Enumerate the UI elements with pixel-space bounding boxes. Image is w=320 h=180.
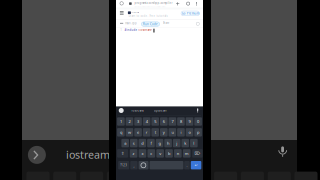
staticText: r <box>146 130 148 135</box>
staticText: d <box>141 140 143 146</box>
staticText: upstream <box>154 109 166 112</box>
button[interactable]: iostream <box>66 148 186 162</box>
staticText: <iostream> <box>138 28 153 32</box>
staticText: ↵ <box>195 163 198 167</box>
staticText: u <box>171 130 173 135</box>
staticText: 1 <box>120 119 122 124</box>
staticText: 3 <box>137 119 139 124</box>
staticText: Programiz <box>131 11 139 13</box>
staticText: f <box>150 140 151 146</box>
staticText: Go Premium <box>182 12 199 15</box>
staticText: m <box>185 151 189 156</box>
staticText: j <box>176 140 177 146</box>
staticText: 8 <box>180 119 182 124</box>
staticText: i <box>180 130 181 135</box>
staticText: #include <box>125 28 138 32</box>
button[interactable]: Play <box>26 144 48 166</box>
staticText: 5 <box>154 119 156 124</box>
staticText: l <box>193 140 194 146</box>
staticText: k <box>184 140 186 146</box>
staticText: a <box>124 140 126 146</box>
staticText: main.cpp <box>125 21 137 25</box>
staticText: 4 <box>146 119 148 124</box>
staticText: 6 <box>163 119 165 124</box>
staticText: Run Code <box>143 22 158 26</box>
staticText: n <box>177 151 179 156</box>
staticText: 0 <box>197 119 199 124</box>
staticText: w <box>128 130 131 135</box>
staticText: e <box>137 130 139 135</box>
staticText: . <box>186 162 187 168</box>
staticText: b <box>168 151 170 156</box>
staticText: p <box>197 130 199 135</box>
staticText: ?123 <box>120 163 127 167</box>
staticText: 9 <box>188 119 190 124</box>
staticText: ⌦ <box>194 151 200 156</box>
staticText: g <box>158 140 160 146</box>
button[interactable]: Voice search <box>276 143 292 161</box>
staticText: iostreams <box>131 109 143 112</box>
staticText: ⇧ <box>121 151 124 156</box>
staticText: o <box>188 130 190 135</box>
staticText: y <box>163 130 165 135</box>
staticText: x <box>141 151 143 156</box>
staticText: Share <box>163 21 170 25</box>
staticText: 1 <box>120 28 122 32</box>
staticText: 7 <box>171 119 173 124</box>
staticText: z <box>133 151 135 156</box>
staticText: , <box>133 162 134 168</box>
staticText: t <box>155 130 156 135</box>
staticText: q <box>120 130 122 135</box>
staticText: iostream <box>66 148 110 162</box>
staticText: Learn to code. Free tutorials <box>128 14 167 18</box>
staticText: v <box>159 151 161 156</box>
staticText: programiz.com/cpp-compiler <box>134 1 172 5</box>
staticText: h <box>167 140 169 146</box>
staticText: 2 <box>128 119 130 124</box>
staticText: c <box>150 151 152 156</box>
staticText: s <box>133 140 135 146</box>
